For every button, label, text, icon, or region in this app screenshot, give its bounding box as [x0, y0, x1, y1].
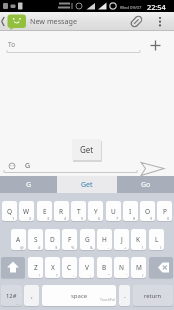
- button[interactable]: B: [97, 257, 112, 278]
- button[interactable]: H: [97, 229, 112, 250]
- button[interactable]: U: [106, 201, 121, 221]
- button[interactable]: space: [42, 285, 116, 306]
- button[interactable]: [138, 159, 168, 178]
- staticText: 12#: [6, 292, 17, 300]
- button[interactable]: New message: [30, 16, 78, 26]
- button[interactable]: T: [71, 201, 86, 221]
- button[interactable]: [149, 257, 173, 278]
- staticText: E: [43, 207, 47, 216]
- staticText: 9: [150, 216, 153, 221]
- staticText: D: [50, 235, 55, 244]
- button[interactable]: N: [114, 257, 129, 278]
- button[interactable]: A: [11, 229, 26, 250]
- button[interactable]: K: [131, 229, 146, 250]
- staticText: F: [68, 235, 72, 244]
- button[interactable]: Y: [88, 201, 103, 221]
- staticText: Z: [34, 263, 38, 272]
- button[interactable]: F: [62, 229, 77, 250]
- button[interactable]: Z: [28, 257, 43, 278]
- button[interactable]: D: [45, 229, 60, 250]
- staticText: 6: [98, 216, 101, 221]
- staticText: ?: [56, 273, 58, 278]
- staticText: J: [121, 235, 123, 244]
- button[interactable]: X: [45, 257, 60, 278]
- staticText: T: [77, 207, 81, 216]
- staticText: !: [39, 273, 41, 278]
- staticText: 0: [167, 216, 170, 221]
- button[interactable]: C: [62, 257, 77, 278]
- button[interactable]: 12#: [1, 285, 22, 306]
- staticText: ;: [90, 273, 92, 278]
- staticText: Y: [94, 207, 98, 216]
- staticText: return: [144, 292, 162, 300]
- staticText: M: [136, 263, 142, 272]
- button[interactable]: P: [157, 201, 172, 221]
- staticText: U: [111, 207, 116, 216]
- staticText: N: [119, 263, 124, 272]
- button[interactable]: O: [140, 201, 155, 221]
- staticText: L: [155, 235, 159, 244]
- staticText: Q: [7, 207, 13, 216]
- staticText: 22:54: [147, 2, 166, 12]
- staticText: H: [102, 235, 107, 244]
- staticText: 5: [81, 216, 84, 221]
- staticText: Wed 09/07: [120, 4, 142, 10]
- staticText: #: [38, 245, 41, 250]
- staticText: ": [108, 273, 110, 278]
- staticText: ,: [31, 291, 33, 300]
- staticText: A: [16, 235, 21, 244]
- staticText: K: [136, 235, 141, 244]
- button[interactable]: V: [79, 257, 94, 278]
- staticText: /: [142, 273, 144, 278]
- staticText: 3: [47, 216, 50, 221]
- staticText: 1: [12, 216, 15, 221]
- staticText: 4: [64, 216, 67, 221]
- staticText: W: [23, 207, 30, 216]
- staticText: Get: [80, 144, 94, 155]
- button[interactable]: W: [19, 201, 34, 221]
- staticText: &: [90, 245, 93, 250]
- button[interactable]: J: [114, 229, 129, 250]
- button[interactable]: return: [133, 285, 173, 306]
- staticText: space: [71, 292, 88, 300]
- button[interactable]: S: [28, 229, 43, 250]
- button[interactable]: [0, 32, 174, 58]
- staticText: Get: [81, 180, 93, 190]
- button[interactable]: R: [54, 201, 69, 221]
- button[interactable]: [1, 257, 25, 278]
- staticText: 2: [29, 216, 32, 221]
- staticText: -: [108, 245, 110, 250]
- staticText: ): [160, 245, 162, 250]
- staticText: (: [142, 245, 144, 250]
- staticText: O: [145, 207, 151, 216]
- button[interactable]: M: [131, 257, 146, 278]
- staticText: S: [34, 235, 38, 244]
- button[interactable]: I: [123, 201, 138, 221]
- staticText: 7: [116, 216, 119, 221]
- staticText: P: [163, 207, 167, 216]
- staticText: C: [67, 263, 72, 272]
- staticText: …: [16, 301, 20, 306]
- button[interactable]: Get: [72, 139, 101, 160]
- button[interactable]: Go: [117, 176, 174, 193]
- button[interactable]: G: [0, 176, 57, 193]
- staticText: Go: [141, 180, 151, 190]
- staticText: 8: [133, 216, 136, 221]
- button[interactable]: ,: [24, 285, 39, 306]
- staticText: @: [20, 245, 24, 250]
- staticText: ': [126, 273, 127, 278]
- button[interactable]: G: [80, 229, 95, 250]
- button[interactable]: E: [37, 201, 52, 221]
- staticText: R: [59, 207, 64, 216]
- button[interactable]: .: [119, 285, 130, 306]
- staticText: V: [85, 263, 89, 272]
- staticText: TouchPal: [100, 297, 115, 302]
- staticText: .: [124, 291, 126, 300]
- button[interactable]: Get: [57, 176, 117, 193]
- staticText: I: [129, 207, 132, 216]
- staticText: X: [51, 263, 55, 272]
- staticText: +: [124, 245, 127, 250]
- button[interactable]: Q: [2, 201, 17, 221]
- staticText: :: [73, 273, 75, 278]
- button[interactable]: L: [149, 229, 164, 250]
